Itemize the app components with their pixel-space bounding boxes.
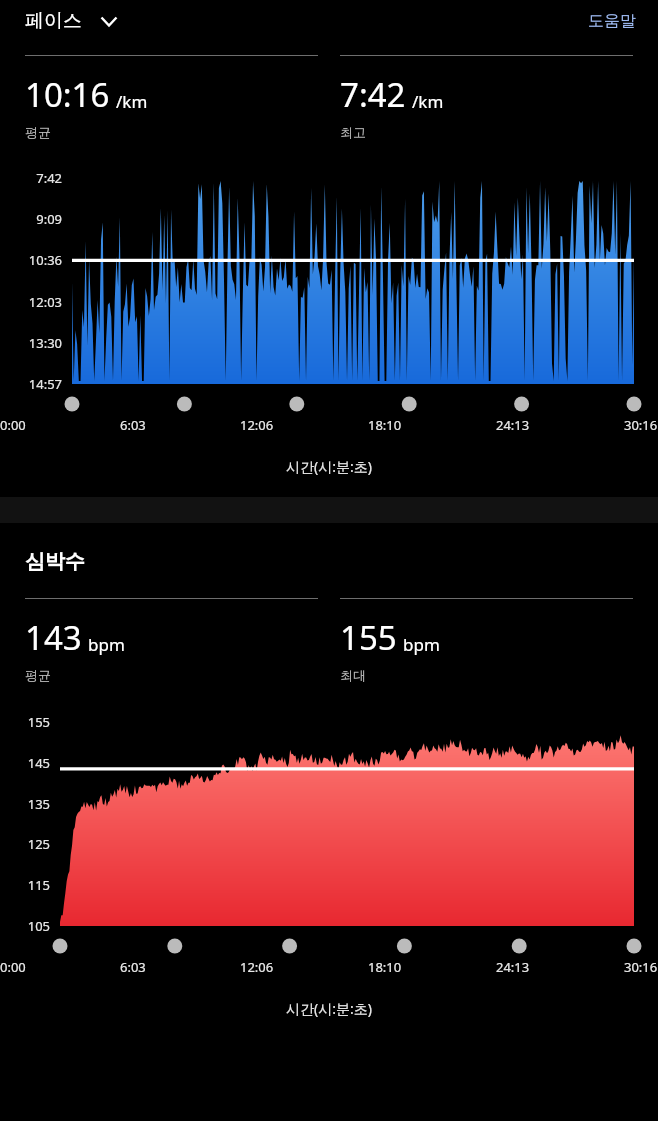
staticText: 13:30	[0, 334, 62, 352]
button[interactable]: 10:16	[25, 55, 318, 140]
staticText: 도움말	[588, 11, 636, 31]
staticText: 시간(시:분:초)	[286, 457, 372, 476]
staticText: 0:00	[0, 958, 26, 976]
button[interactable]: 155	[340, 598, 633, 683]
staticText: 6:03	[120, 416, 146, 434]
staticText: 155	[340, 615, 397, 660]
staticText: 14:57	[0, 375, 62, 393]
staticText: 30:16	[624, 958, 658, 976]
staticText: 최대	[340, 667, 366, 683]
staticText: 시간(시:분:초)	[286, 999, 372, 1018]
button[interactable]: 143	[25, 598, 318, 683]
staticText: 심박수	[25, 549, 85, 574]
button[interactable]: 7:42	[340, 55, 633, 140]
staticText: 143	[25, 615, 82, 660]
staticText: 9:09	[0, 210, 62, 228]
other: Change metric	[98, 10, 120, 32]
staticText: 125	[0, 835, 50, 853]
staticText: 24:13	[496, 958, 530, 976]
staticText: 10:36	[0, 251, 62, 269]
staticText: 145	[0, 754, 50, 772]
staticText: 10:16	[25, 72, 110, 117]
staticText: /km	[412, 90, 444, 113]
staticText: 최고	[340, 124, 366, 140]
staticText: 평균	[25, 667, 51, 683]
staticText: 30:16	[624, 416, 658, 434]
staticText: 7:42	[0, 169, 62, 187]
staticText: 24:13	[496, 416, 530, 434]
staticText: 평균	[25, 124, 51, 140]
staticText: 7:42	[340, 72, 406, 117]
staticText: 18:10	[368, 958, 402, 976]
staticText: 6:03	[120, 958, 146, 976]
staticText: 135	[0, 795, 50, 813]
staticText: 12:03	[0, 293, 62, 311]
staticText: bpm	[403, 633, 440, 656]
staticText: 12:06	[240, 416, 274, 434]
staticText: 115	[0, 876, 50, 894]
staticText: 12:06	[240, 958, 274, 976]
button[interactable]: 페이스	[25, 9, 120, 33]
button[interactable]: 도움말	[588, 11, 636, 31]
staticText: bpm	[88, 633, 125, 656]
staticText: /km	[116, 90, 148, 113]
staticText: 페이스	[25, 9, 82, 33]
staticText: 18:10	[368, 416, 402, 434]
staticText: 155	[0, 713, 50, 731]
staticText: 0:00	[0, 416, 26, 434]
staticText: 105	[0, 917, 50, 935]
